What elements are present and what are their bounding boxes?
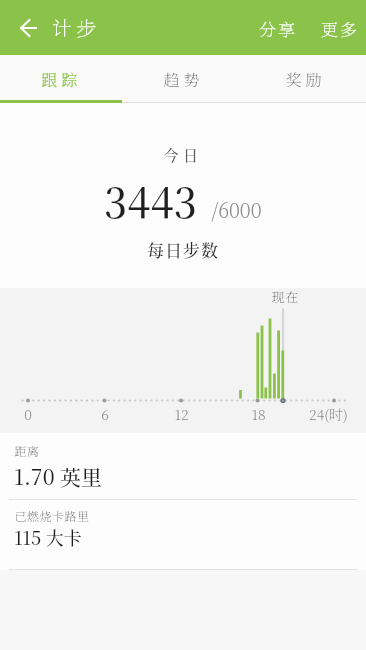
button[interactable]: 已燃烧卡路里 — [0, 500, 366, 569]
staticText: 115 大卡 — [14, 524, 82, 550]
staticText: 24(时) — [309, 404, 348, 424]
staticText: 跟踪 — [41, 68, 82, 91]
staticText: 分享 — [259, 16, 297, 40]
button[interactable]: 分享 — [257, 0, 299, 55]
staticText: 奖励 — [285, 68, 326, 91]
button[interactable]: 距离 — [0, 433, 366, 499]
button[interactable]: 更多 — [319, 0, 361, 55]
button[interactable]: 跟踪 — [0, 55, 122, 103]
button[interactable] — [0, 0, 52, 55]
staticText: /6000 — [211, 195, 262, 224]
staticText: 趋势 — [163, 68, 204, 91]
staticText: 距离 — [14, 442, 40, 459]
button[interactable]: 奖励 — [244, 55, 366, 103]
staticText: 已燃烧卡路里 — [14, 507, 90, 524]
staticText: 每日步数 — [147, 237, 219, 261]
staticText: 现在 — [271, 287, 300, 306]
staticText: 1.70 英里 — [14, 461, 102, 491]
staticText: 3443 — [104, 171, 197, 230]
staticText: 今日 — [163, 144, 203, 166]
staticText: 18 — [251, 404, 266, 424]
staticText: 更多 — [321, 16, 359, 40]
button[interactable]: 趋势 — [122, 55, 244, 103]
staticText: 12 — [174, 404, 189, 424]
staticText: 0 — [24, 404, 32, 424]
staticText: 6 — [101, 404, 109, 424]
staticText: 计步 — [52, 13, 100, 42]
